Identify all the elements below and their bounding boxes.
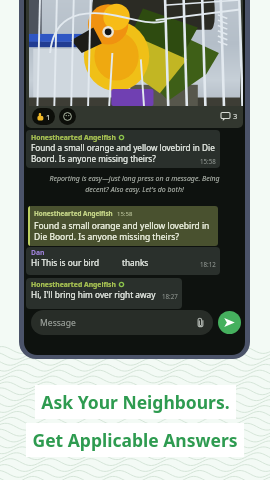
staticText: Honesthearted Angelfish [31, 133, 116, 142]
staticText: Honesthearted Angelfish [31, 280, 116, 289]
staticText: thanks [122, 257, 149, 268]
staticText: 1 [46, 112, 51, 122]
staticText: Get Applicable Answers [32, 428, 238, 452]
staticText: Reporting is easy—just long press on a m… [30, 174, 239, 194]
button[interactable]: Honesthearted Angelfish [26, 130, 220, 168]
button[interactable]: 1 [36, 108, 51, 125]
button[interactable]: Dan [26, 247, 220, 275]
staticText: Dan [31, 248, 45, 257]
button[interactable]: Add reaction [59, 108, 76, 125]
button[interactable]: Message [40, 310, 206, 335]
staticText: 15:58 [117, 210, 133, 218]
staticText: Found a small orange and yellow lovebird… [34, 220, 210, 242]
staticText: 18:27 [162, 292, 178, 300]
button[interactable]: Honesthearted Angelfish [28, 206, 218, 246]
staticText: Hi This is our bird [31, 257, 100, 268]
staticText: Message [40, 317, 76, 329]
button[interactable]: Honesthearted Angelfish [26, 278, 182, 309]
staticText: Hi, I'll bring him over right away [31, 289, 156, 300]
button[interactable]: 3 [221, 111, 238, 121]
staticText: Honesthearted Angelfish [34, 209, 113, 218]
staticText: 18:12 [200, 260, 216, 268]
other: Attach [195, 317, 206, 328]
button[interactable]: Send [218, 311, 241, 334]
staticText: 3 [233, 111, 238, 121]
staticText: Ask Your Neighbours. [41, 390, 230, 414]
staticText: 15:58 [200, 157, 216, 165]
staticText: Found a small orange and yellow lovebird… [31, 142, 215, 164]
